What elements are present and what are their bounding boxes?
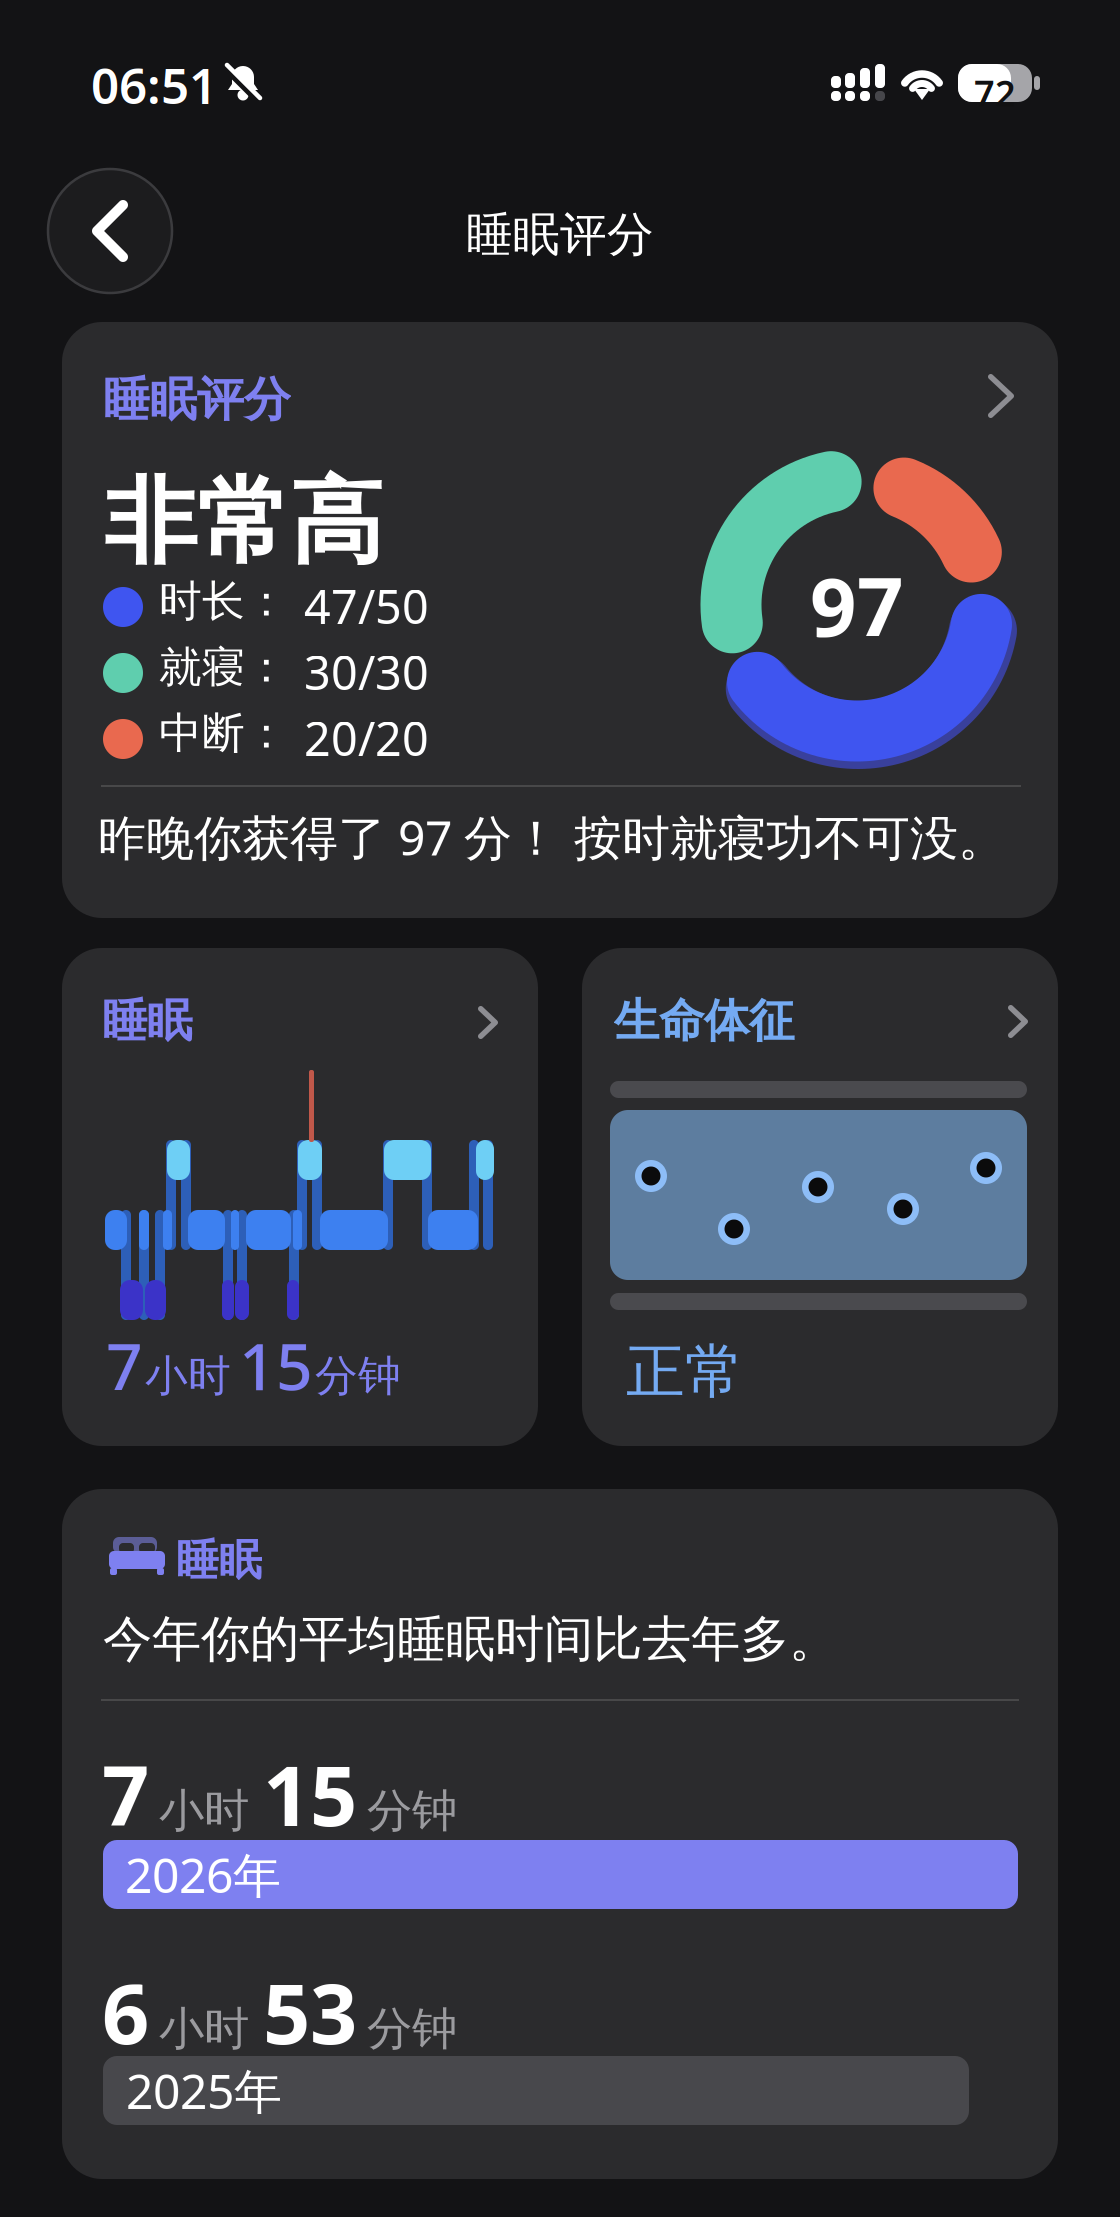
staticText: 7 xyxy=(106,1323,143,1408)
button[interactable]: 2026年 xyxy=(103,1840,1018,1909)
staticText: 15 xyxy=(239,1323,313,1408)
staticText: 分钟 xyxy=(367,1783,457,1839)
staticText: 就寝： xyxy=(159,641,288,693)
staticText: 昨晚你获得了 97 分！ 按时就寝功不可没。 xyxy=(98,805,1006,869)
staticText: 小时 xyxy=(145,1350,231,1402)
staticText: 睡眠 xyxy=(176,1534,262,1586)
button[interactable]: 生命体征 xyxy=(582,948,1058,1446)
button[interactable]: 2025年 xyxy=(103,2056,969,2125)
staticText: 睡眠 xyxy=(102,993,192,1049)
staticText: 睡眠评分 xyxy=(466,206,654,263)
staticText: 97 xyxy=(810,551,904,659)
staticText: 2025年 xyxy=(126,2059,282,2122)
button[interactable]: 返回 xyxy=(48,169,172,293)
staticText: 生命体征 xyxy=(614,993,794,1049)
staticText: 6 xyxy=(102,1957,149,2067)
staticText: 正常 xyxy=(626,1336,744,1408)
staticText: 今年你的平均睡眠时间比去年多。 xyxy=(103,1609,838,1670)
staticText: 中断： xyxy=(159,707,288,759)
staticText: 时长： xyxy=(159,575,288,627)
staticText: 分钟 xyxy=(367,2001,457,2057)
staticText: 小时 xyxy=(159,2001,249,2057)
staticText: 非常高 xyxy=(104,465,383,580)
staticText: 47/50 xyxy=(304,575,429,637)
staticText: 15 xyxy=(263,1739,357,1849)
staticText: 30/30 xyxy=(304,641,429,703)
button[interactable]: 睡眠 xyxy=(62,948,538,1446)
staticText: 20/20 xyxy=(304,707,429,769)
staticText: 睡眠评分 xyxy=(103,371,291,428)
staticText: 2026年 xyxy=(125,1843,281,1906)
staticText: 72 xyxy=(974,69,1016,117)
staticText: 7 xyxy=(102,1739,149,1849)
button[interactable]: 睡眠评分 xyxy=(62,322,1058,918)
staticText: 06:51 xyxy=(91,52,217,117)
staticText: 分钟 xyxy=(315,1350,401,1402)
staticText: 小时 xyxy=(159,1783,249,1839)
staticText: 53 xyxy=(263,1957,357,2067)
